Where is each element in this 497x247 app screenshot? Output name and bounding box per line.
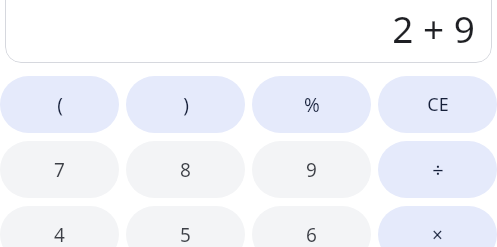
button[interactable]: ( <box>0 76 119 133</box>
staticText: × <box>432 222 443 247</box>
staticText: 4 <box>54 222 65 247</box>
staticText: CE <box>427 92 449 117</box>
button[interactable]: 9 <box>252 141 371 198</box>
staticText: 2 + 9 <box>392 3 475 53</box>
staticText: ÷ <box>432 156 444 183</box>
button[interactable]: ) <box>126 76 245 133</box>
staticText: ) <box>183 92 189 118</box>
button[interactable]: Divide <box>378 141 497 198</box>
button[interactable]: % <box>252 76 371 133</box>
staticText: 6 <box>306 222 317 247</box>
button[interactable]: 7 <box>0 141 119 198</box>
button[interactable]: 5 <box>126 206 245 247</box>
button[interactable]: 6 <box>252 206 371 247</box>
button[interactable]: 8 <box>126 141 245 198</box>
button[interactable]: CE <box>378 76 497 133</box>
staticText: 5 <box>180 222 191 247</box>
staticText: 9 <box>306 157 317 183</box>
staticText: 7 <box>54 157 65 183</box>
staticText: ( <box>57 92 63 118</box>
button[interactable]: 4 <box>0 206 119 247</box>
button[interactable]: Multiply <box>378 206 497 247</box>
staticText: % <box>304 92 320 118</box>
staticText: 8 <box>180 157 191 183</box>
button[interactable]: 2 + 9 <box>5 0 492 63</box>
